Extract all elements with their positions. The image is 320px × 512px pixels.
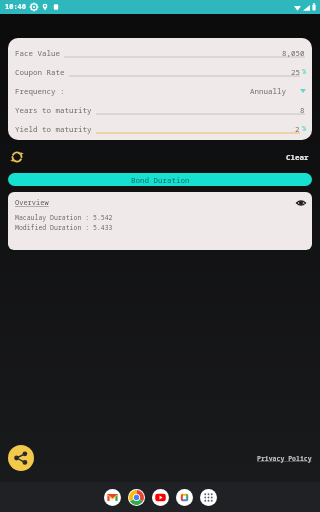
staticText: Bond Duration	[131, 175, 190, 185]
staticText: Macaulay Duration : 5.542	[15, 213, 113, 222]
button[interactable]: Frequency :	[8, 81, 312, 100]
staticText: Frequency :	[15, 86, 65, 96]
button[interactable]: Chrome	[128, 489, 145, 506]
button[interactable]: Yield to maturity	[8, 119, 312, 138]
staticText: Privacy Policy	[257, 454, 312, 463]
staticText: Face Value	[15, 48, 60, 58]
button[interactable]: Coupon Rate	[8, 62, 312, 81]
button[interactable]: Bond Duration	[8, 173, 312, 186]
staticText: Clear	[286, 152, 309, 162]
button[interactable]: All apps	[200, 489, 217, 506]
staticText: Annually	[250, 86, 286, 96]
button[interactable]: Photos	[176, 489, 193, 506]
staticText: 8	[300, 105, 305, 115]
staticText: Yield to maturity	[15, 124, 92, 134]
button[interactable]: Face Value	[8, 43, 312, 62]
button[interactable]: Years to maturity	[8, 100, 312, 119]
button[interactable]: Clear	[284, 150, 311, 164]
button[interactable]: Share	[8, 445, 34, 471]
staticText: 2	[295, 124, 300, 134]
staticText: Overview	[15, 198, 49, 208]
button[interactable]: Gmail	[104, 489, 121, 506]
staticText: 8,050	[282, 48, 305, 58]
button[interactable]: Privacy Policy	[255, 452, 314, 465]
staticText: 10:46	[5, 2, 26, 12]
button[interactable]: Show details	[295, 197, 306, 208]
staticText: Coupon Rate	[15, 67, 65, 77]
staticText: Years to maturity	[15, 105, 92, 115]
staticText: Modified Duration : 5.433	[15, 223, 113, 232]
button[interactable]: YouTube	[152, 489, 169, 506]
staticText: 25	[291, 67, 300, 77]
button[interactable]: Swap	[9, 149, 25, 165]
staticText: %	[302, 124, 307, 134]
staticText: %	[302, 67, 307, 77]
